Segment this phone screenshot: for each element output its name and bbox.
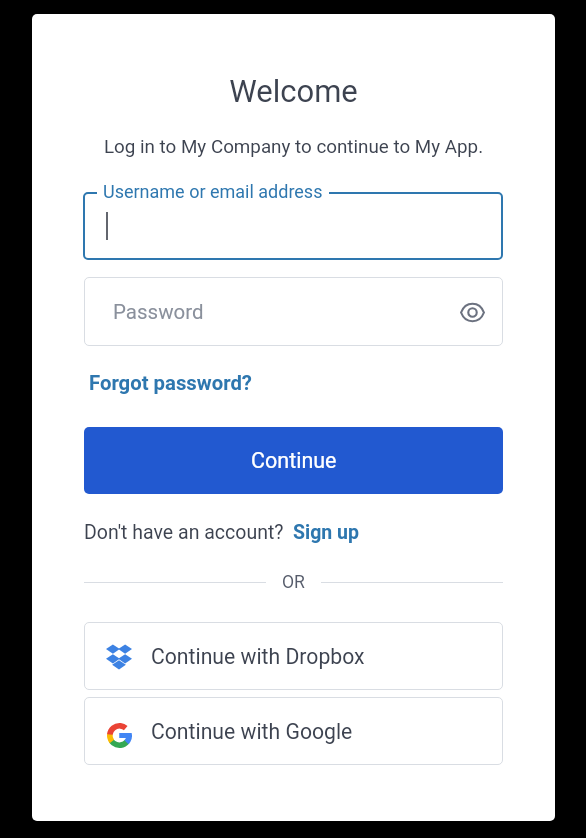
button[interactable]: Password <box>84 277 503 346</box>
staticText: Log in to My Company to continue to My A… <box>32 136 555 158</box>
button[interactable]: Username or email address <box>83 192 503 260</box>
staticText: Password <box>113 300 204 324</box>
button[interactable]: Continue with Google <box>84 697 503 765</box>
staticText: Sign up <box>293 521 359 544</box>
button[interactable]: Sign up <box>287 515 365 552</box>
staticText: Welcome <box>32 73 555 109</box>
staticText: Continue with Dropbox <box>151 644 365 669</box>
staticText: Forgot password? <box>89 371 252 395</box>
staticText: Continue with Google <box>151 719 353 744</box>
button[interactable]: Forgot password? <box>84 365 260 403</box>
staticText: Username or email address <box>103 181 323 202</box>
staticText: Continue <box>251 448 337 473</box>
button[interactable]: Continue with Dropbox <box>84 622 503 690</box>
staticText: Don't have an account? <box>84 521 284 544</box>
staticText: OR <box>282 572 305 593</box>
button[interactable]: Continue <box>84 427 503 494</box>
button[interactable]: Show password <box>457 297 487 327</box>
